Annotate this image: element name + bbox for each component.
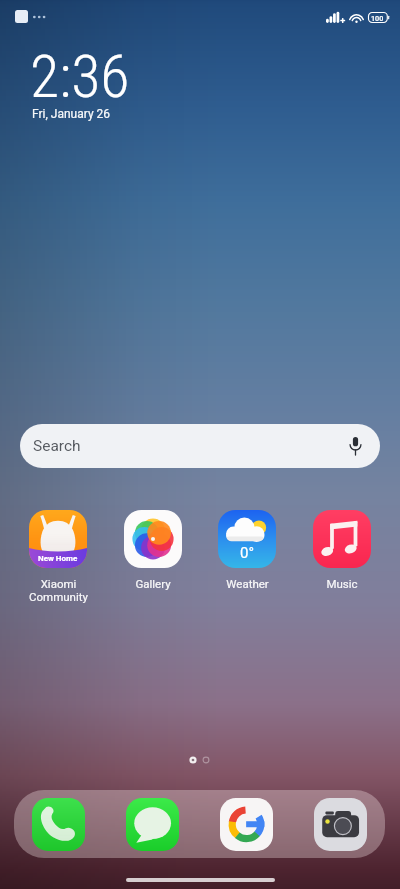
button[interactable]: Phone [32, 798, 85, 851]
staticText: Gallery [135, 577, 171, 590]
staticText: 100 [371, 14, 384, 22]
staticText: New Home [38, 554, 78, 563]
staticText: Weather [226, 577, 269, 590]
button[interactable]: Page indicator [186, 753, 214, 767]
button[interactable]: Messages [126, 798, 179, 851]
button[interactable]: Google [220, 798, 273, 851]
button[interactable]: Camera [314, 798, 367, 851]
staticText: 2:36 [30, 41, 130, 111]
button[interactable]: Search [20, 424, 380, 468]
staticText: Search [33, 437, 81, 455]
button[interactable]: New Home [12, 510, 104, 603]
button[interactable]: Music [296, 510, 388, 590]
staticText: 0° [240, 544, 255, 562]
button[interactable]: 0° [201, 510, 293, 590]
staticText: Xiaomi Community [29, 577, 88, 603]
staticText: Music [326, 577, 358, 590]
staticText: Fri, January 26 [32, 107, 111, 121]
button[interactable]: Gallery [107, 510, 199, 590]
